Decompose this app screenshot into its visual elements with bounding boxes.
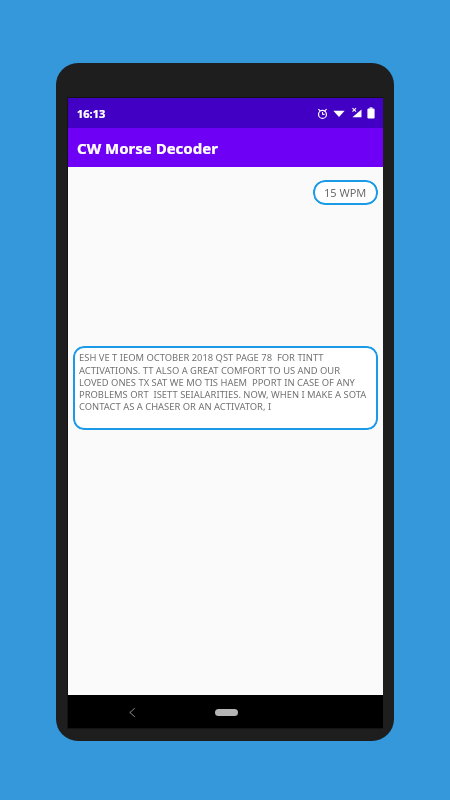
staticText: ESH VE T IEOM OCTOBER 2018 QST PAGE 78 F…: [79, 351, 372, 412]
button[interactable]: Home: [206, 701, 246, 723]
button[interactable]: 15 WPM: [313, 180, 378, 205]
staticText: 16:13: [77, 106, 106, 121]
button[interactable]: Back: [118, 698, 146, 726]
staticText: CW Morse Decoder: [77, 138, 218, 158]
button[interactable]: ESH VE T IEOM OCTOBER 2018 QST PAGE 78 F…: [73, 346, 378, 430]
staticText: 15 WPM: [324, 185, 367, 200]
